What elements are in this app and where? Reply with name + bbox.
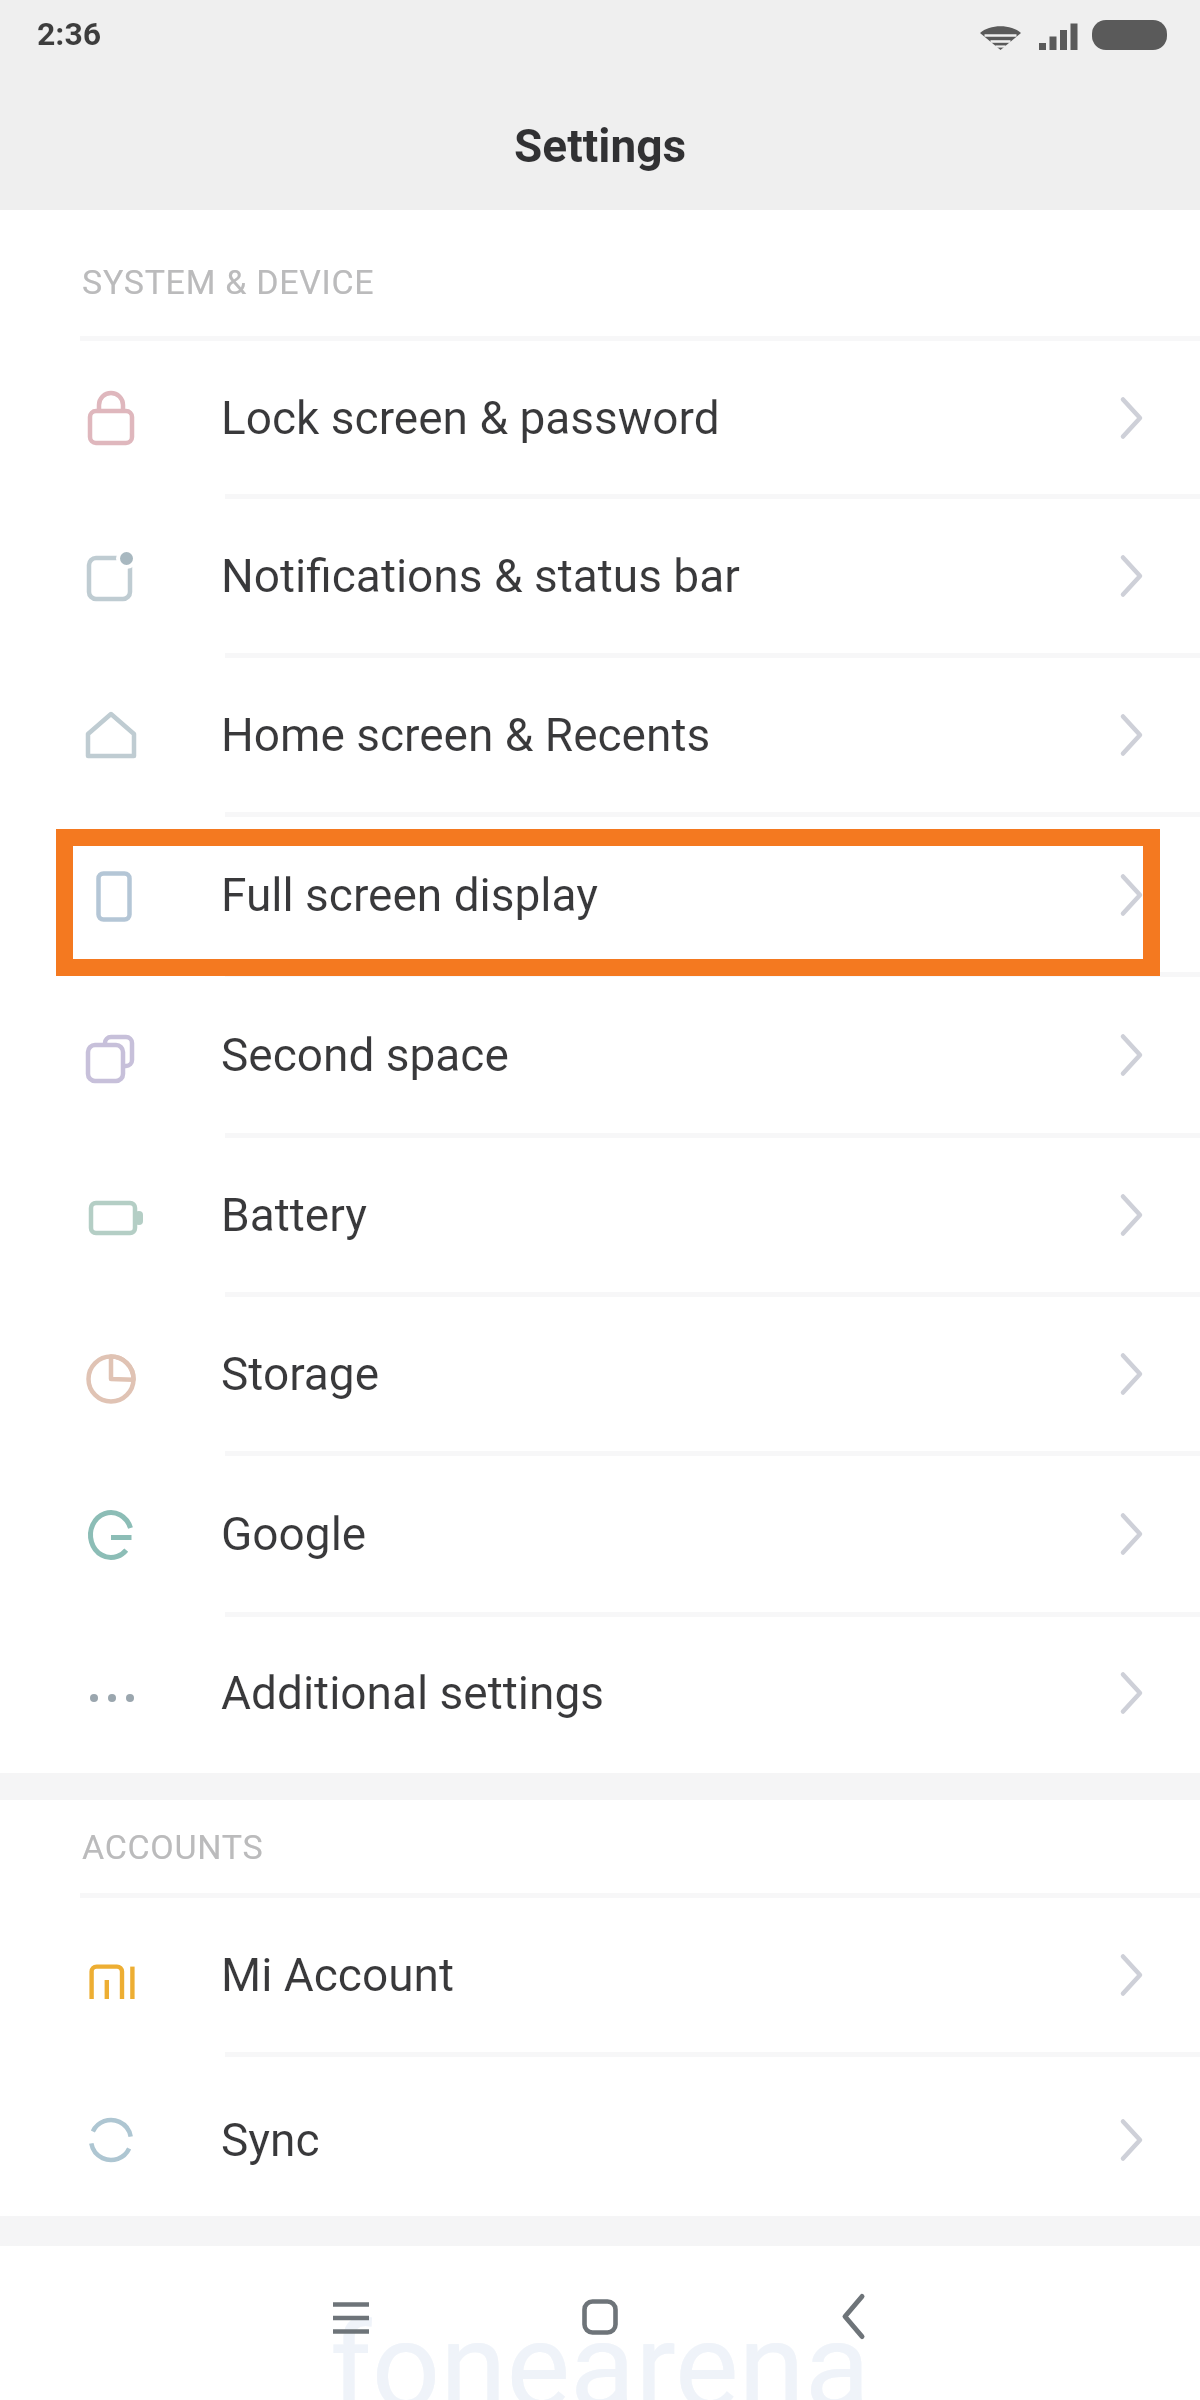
button[interactable]: Full screen display bbox=[0, 817, 1200, 972]
staticText: Full screen display bbox=[221, 868, 598, 922]
staticText: Storage bbox=[221, 1347, 380, 1401]
staticText: Notifications & status bar bbox=[221, 549, 740, 603]
button[interactable]: Home screen & Recents bbox=[0, 658, 1200, 812]
staticText: Settings bbox=[514, 119, 687, 173]
staticText: Google bbox=[221, 1507, 367, 1561]
button[interactable]: Storage bbox=[0, 1297, 1200, 1451]
button[interactable]: Back bbox=[784, 2267, 924, 2367]
button[interactable]: Sync bbox=[0, 2057, 1200, 2216]
button[interactable]: Mi Account bbox=[0, 1898, 1200, 2052]
button[interactable]: Menu bbox=[281, 2268, 421, 2368]
staticText: Battery bbox=[221, 1188, 367, 1242]
button[interactable]: Home bbox=[530, 2267, 670, 2367]
button[interactable]: Second space bbox=[0, 977, 1200, 1133]
staticText: 2:36 bbox=[37, 15, 102, 53]
staticText: fonearena bbox=[330, 2297, 871, 2400]
button[interactable]: Google bbox=[0, 1456, 1200, 1612]
button[interactable]: Notifications & status bar bbox=[0, 499, 1200, 653]
staticText: Lock screen & password bbox=[221, 391, 720, 445]
staticText: ACCOUNTS bbox=[82, 1827, 264, 1867]
button[interactable]: Battery bbox=[0, 1138, 1200, 1292]
staticText: Second space bbox=[221, 1028, 509, 1082]
staticText: Additional settings bbox=[221, 1666, 604, 1720]
button[interactable]: Additional settings bbox=[0, 1617, 1200, 1768]
staticText: Home screen & Recents bbox=[221, 708, 711, 762]
staticText: Mi Account bbox=[221, 1948, 454, 2002]
staticText: SYSTEM & DEVICE bbox=[82, 262, 375, 302]
button[interactable]: Lock screen & password bbox=[0, 341, 1200, 494]
staticText: Sync bbox=[221, 2113, 320, 2167]
